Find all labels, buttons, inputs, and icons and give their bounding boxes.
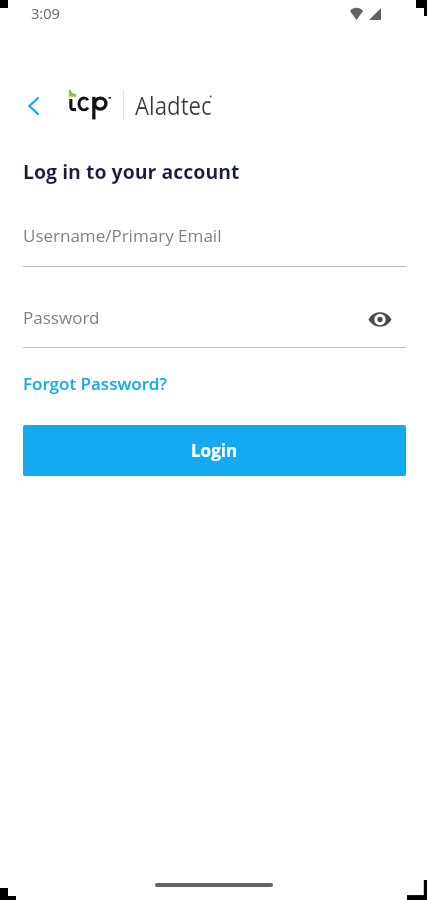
button[interactable]: Back [13,86,53,126]
button[interactable]: Forgot Password? [23,372,167,395]
button[interactable]: Username/Primary Email [23,222,406,267]
staticText: 3:09 [31,4,60,24]
staticText: Username/Primary Email [23,224,222,247]
button[interactable]: Password [23,303,406,347]
staticText: Log in to your account [23,158,240,185]
staticText: Login [191,439,238,462]
button[interactable]: Login [23,425,406,476]
button[interactable]: Show password [360,299,400,339]
staticText: Password [23,306,100,329]
staticText: Aladtec [135,87,212,122]
staticText: Forgot Password? [23,372,167,395]
